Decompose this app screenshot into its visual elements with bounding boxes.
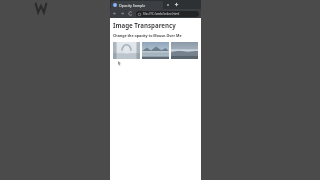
button[interactable]: Close tab [166,3,170,7]
button[interactable]: Back [112,11,117,16]
button[interactable]: Landscape photo [113,42,140,59]
staticText: Image Transparency [113,21,176,29]
button[interactable]: Opacity Sample [111,1,163,9]
button[interactable]: New tab [174,2,179,7]
button[interactable]: Forward [120,11,125,16]
button[interactable]: file:///C:/web/index.html [136,11,199,17]
staticText: Change the opacity to Mouse-Over Me [113,33,182,38]
button[interactable]: Landscape photo [171,42,198,59]
button[interactable]: Landscape photo [142,42,169,59]
button[interactable]: Reload [128,11,133,16]
staticText: file:///C:/web/index.html [143,12,180,16]
staticText: Opacity Sample [119,3,146,8]
